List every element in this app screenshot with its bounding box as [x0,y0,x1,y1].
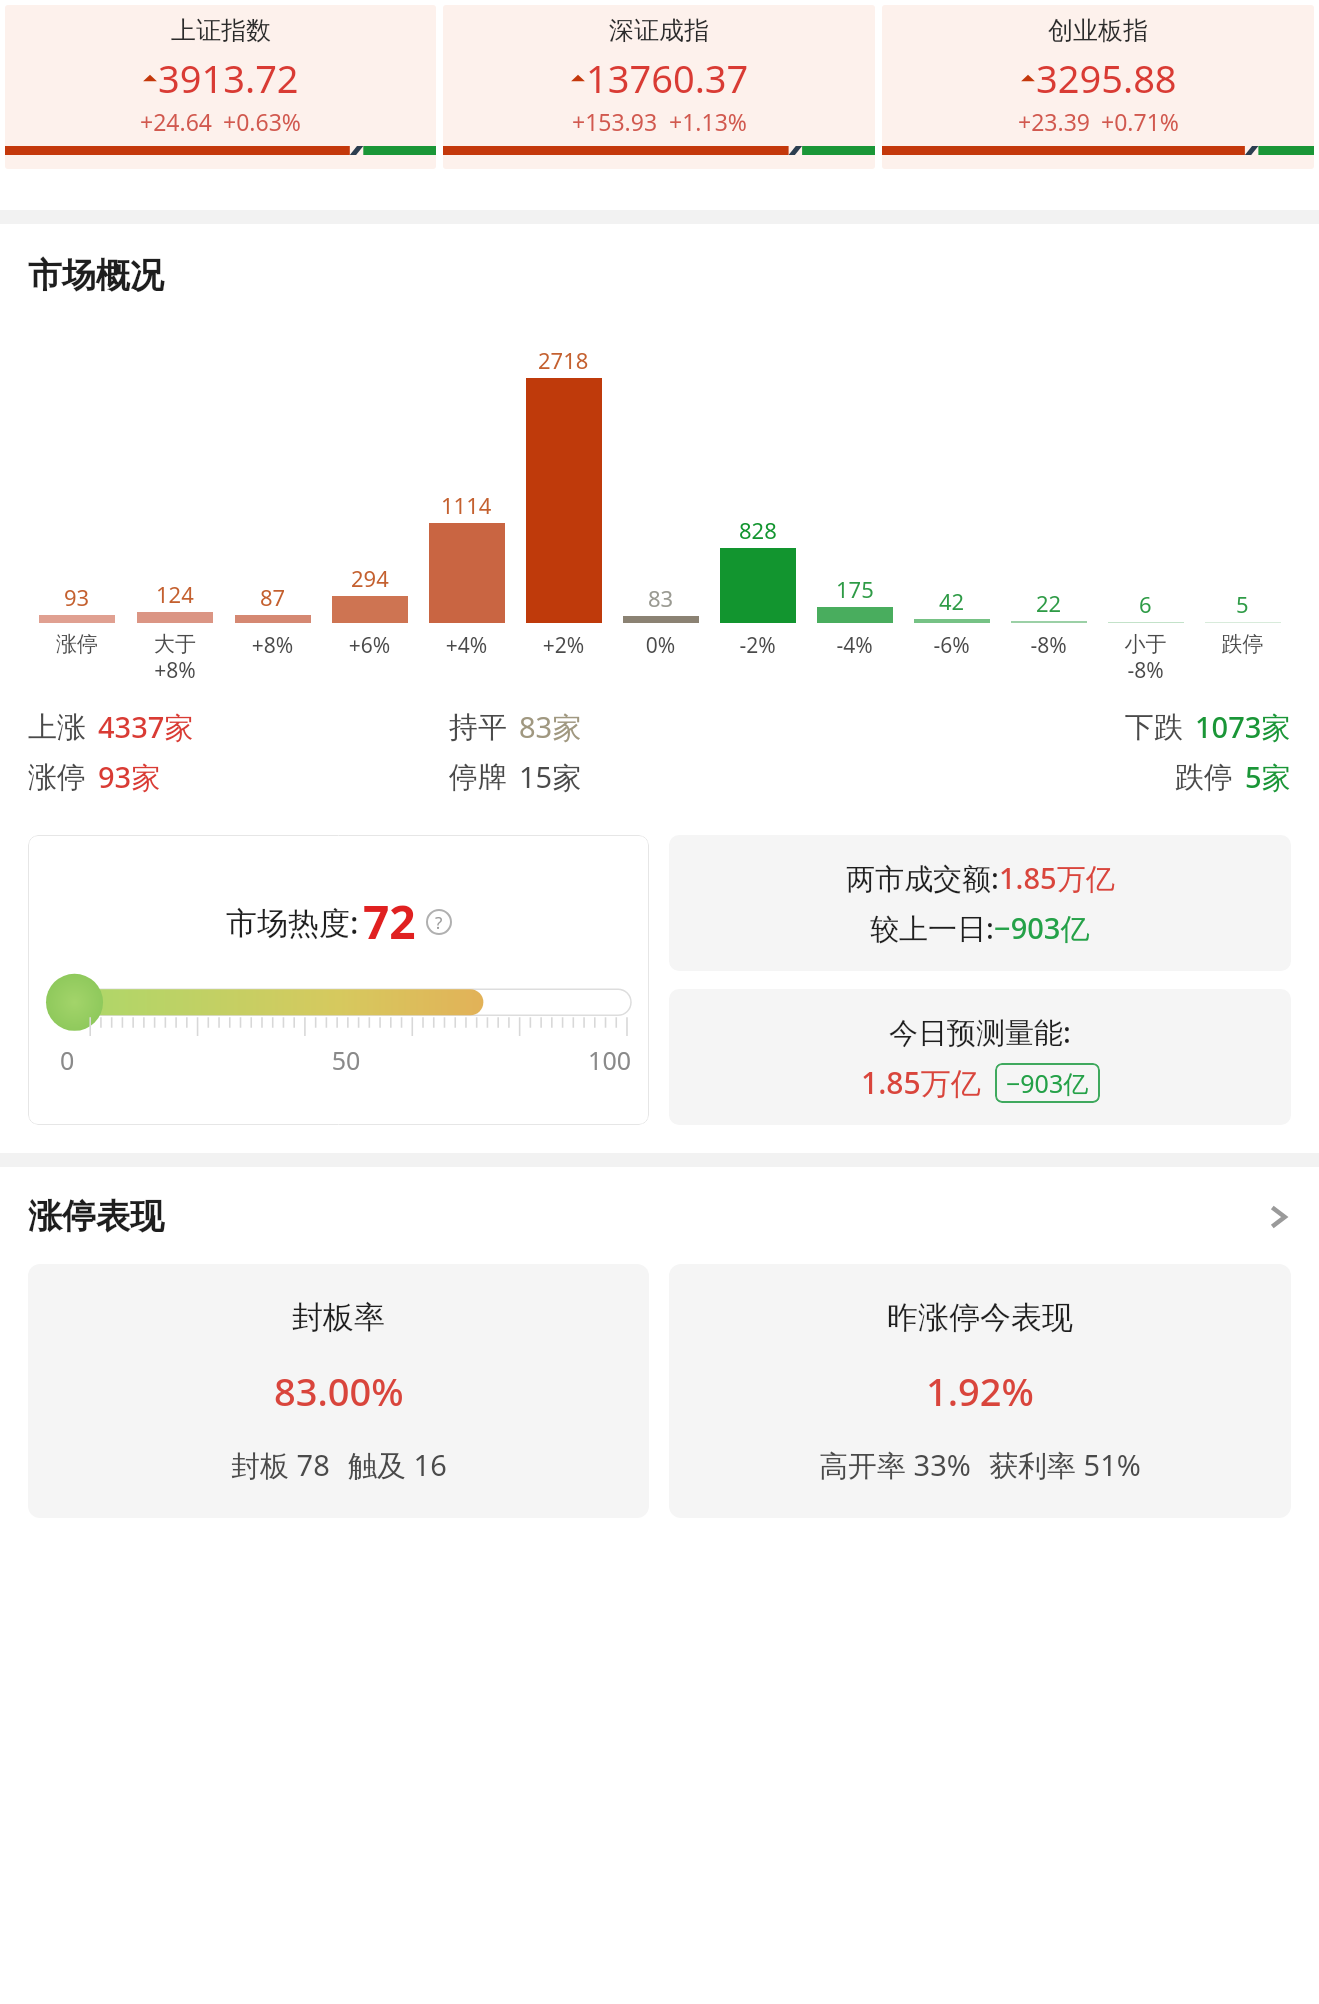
staticText: 87 [260,582,286,612]
staticText: 昨涨停今表现 [887,1298,1073,1337]
staticText: 0% [612,631,709,660]
staticText: 175 [836,574,874,604]
staticText: 市场热度: [226,901,359,943]
staticText: -2% [709,631,806,660]
button[interactable]: 涨停表现 [28,1195,1291,1238]
staticText: 83家 [519,707,582,747]
staticText: 1073家 [1195,707,1291,747]
staticText: +1.13% [669,106,747,137]
staticText: 市场概况 [28,254,164,297]
staticText: 828 [739,515,777,545]
staticText: 22 [1036,588,1062,618]
staticText: 1.92% [926,1365,1034,1417]
button[interactable]: 两市成交额: [669,835,1291,971]
staticText: 高开率 33% [819,1445,971,1485]
staticText: −903亿 [994,908,1090,948]
staticText: 上证指数 [171,15,271,46]
staticText: +23.39 [1018,106,1090,137]
button[interactable]: 封板率 [28,1264,649,1518]
staticText: 15家 [519,757,582,797]
staticText: 100 [441,1043,631,1077]
staticText: +0.63% [223,106,301,137]
staticText: 触及 16 [348,1445,447,1485]
staticText: 5 [1236,589,1249,619]
button[interactable]: 创业板指 [882,5,1314,169]
staticText: +8% [224,631,321,660]
staticText: 42 [939,586,965,616]
staticText: 0 [60,1043,251,1077]
staticText: 深证成指 [609,15,709,46]
staticText: 持平 [449,709,507,746]
staticText: 涨停表现 [28,1195,164,1238]
staticText: 1114 [441,490,492,520]
staticText: −903亿 [1006,1066,1089,1100]
staticText: 13760.37 [586,52,749,104]
button[interactable]: 市场热度: [28,835,649,1125]
staticText: -8% [1000,631,1097,660]
staticText: -6% [903,631,1000,660]
staticText: 5家 [1245,757,1291,797]
staticText: 跌停 [1194,631,1291,657]
staticText: -4% [806,631,903,660]
staticText: 1.85万亿 [861,1062,981,1103]
other: 更多 [1265,1200,1291,1234]
staticText: 今日预测量能: [889,1012,1071,1052]
staticText: +4% [418,631,515,660]
staticText: +153.93 [572,106,658,137]
staticText: 2718 [538,345,589,375]
staticText: 3913.72 [158,52,299,104]
staticText: 涨停 [28,631,126,657]
staticText: 1.85万亿 [999,858,1115,898]
staticText: 涨停 [28,759,86,796]
button[interactable]: 今日预测量能: [669,989,1291,1125]
staticText: 6 [1139,589,1152,619]
staticText: 停牌 [449,759,507,796]
button[interactable]: 深证成指 [443,5,875,169]
staticText: 小于 -8% [1097,631,1194,685]
staticText: 50 [251,1043,441,1077]
staticText: 下跌 [1125,709,1183,746]
staticText: +2% [515,631,612,660]
staticText: 封板 78 [231,1445,330,1485]
staticText: 83.00% [274,1365,404,1417]
staticText: 294 [351,563,389,593]
staticText: 创业板指 [1048,15,1148,46]
staticText: 93家 [98,757,161,797]
staticText: ? [435,911,443,934]
staticText: 较上一日: [870,908,994,948]
staticText: 大于 +8% [126,631,224,685]
staticText: 124 [156,579,194,609]
staticText: 上涨 [28,709,86,746]
staticText: 跌停 [1175,759,1233,796]
button[interactable]: 帮助 [426,909,452,935]
staticText: +0.71% [1101,106,1179,137]
button[interactable]: 昨涨停今表现 [669,1264,1291,1518]
staticText: 83 [648,583,674,613]
staticText: 72 [363,890,416,953]
staticText: 两市成交额: [846,858,999,898]
staticText: 3295.88 [1036,52,1177,104]
staticText: 93 [64,582,90,612]
button[interactable]: 上证指数 [5,5,436,169]
staticText: 4337家 [98,707,194,747]
staticText: +6% [321,631,418,660]
staticText: 封板率 [292,1298,385,1337]
staticText: +24.64 [140,106,212,137]
staticText: 获利率 51% [989,1445,1141,1485]
